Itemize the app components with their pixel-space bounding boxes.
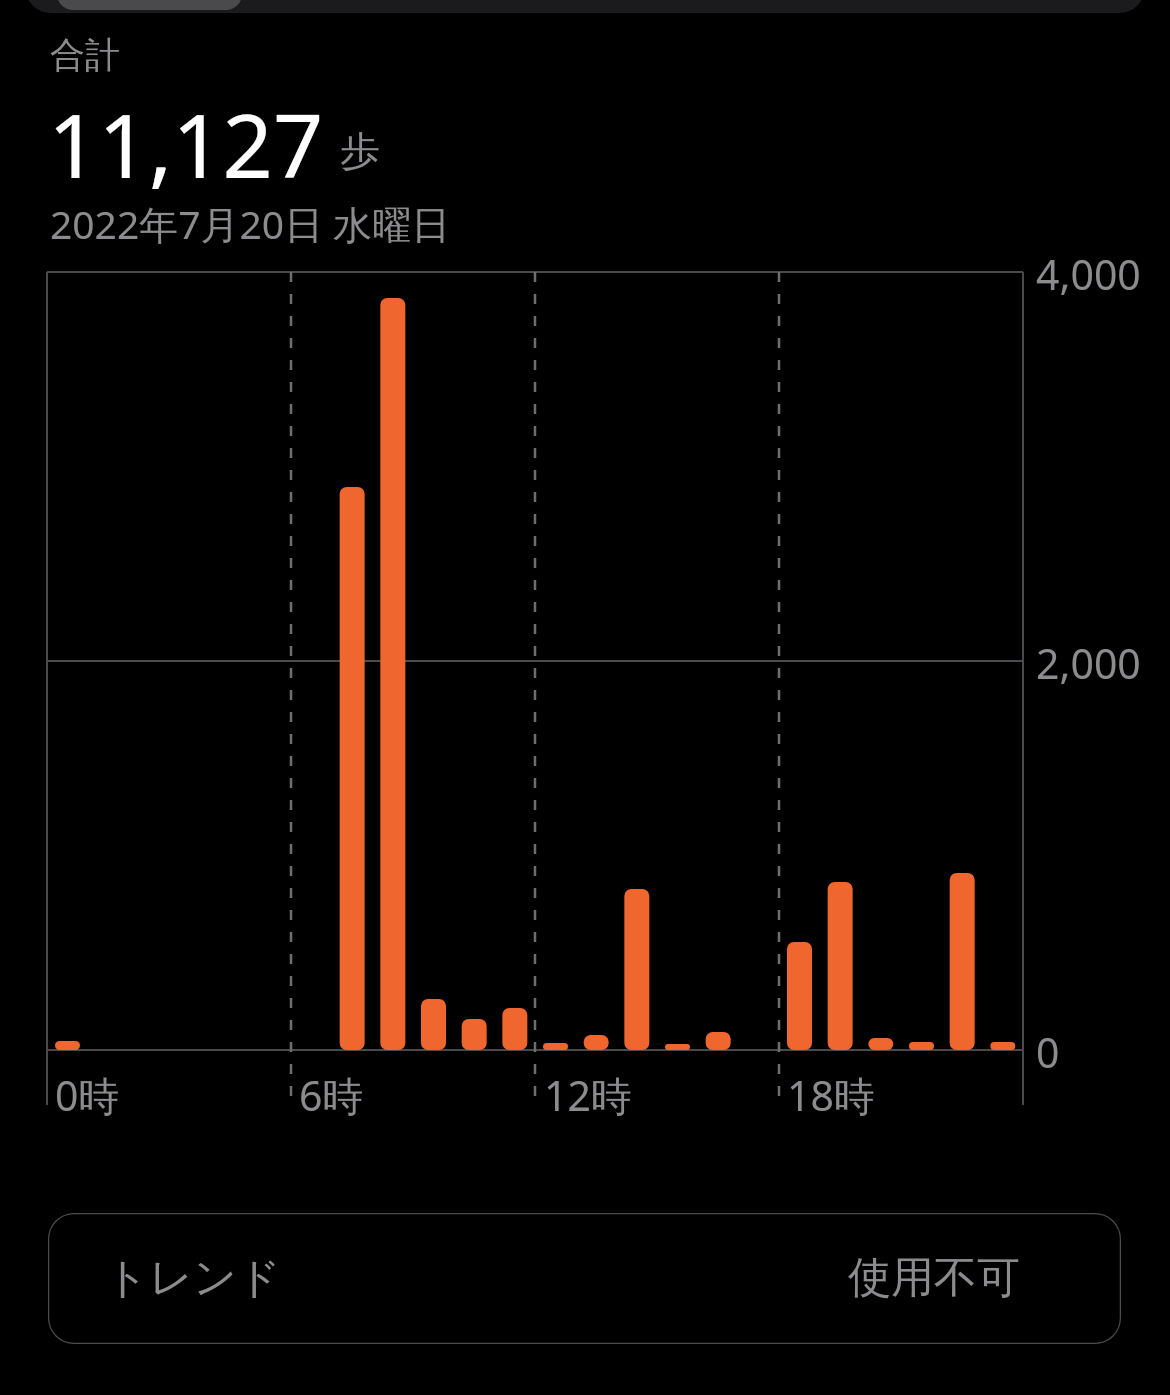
button[interactable]: トレンド [48, 1213, 1121, 1344]
staticText: 11,127 [48, 84, 324, 204]
staticText: 6時 [299, 1067, 364, 1123]
staticText: トレンド [105, 1251, 282, 1305]
button[interactable]: Card [25, 0, 1145, 13]
staticText: 2022年7月20日 水曜日 [50, 197, 451, 250]
staticText: 合計 [50, 33, 120, 77]
staticText: 18時 [787, 1067, 875, 1123]
staticText: 4,000 [1036, 246, 1141, 302]
staticText: 0時 [55, 1067, 120, 1123]
staticText: 歩 [340, 126, 380, 176]
staticText: 使用不可 [848, 1251, 1020, 1305]
staticText: 12時 [544, 1067, 632, 1123]
staticText: 0 [1036, 1024, 1060, 1080]
staticText: 2,000 [1036, 635, 1141, 691]
